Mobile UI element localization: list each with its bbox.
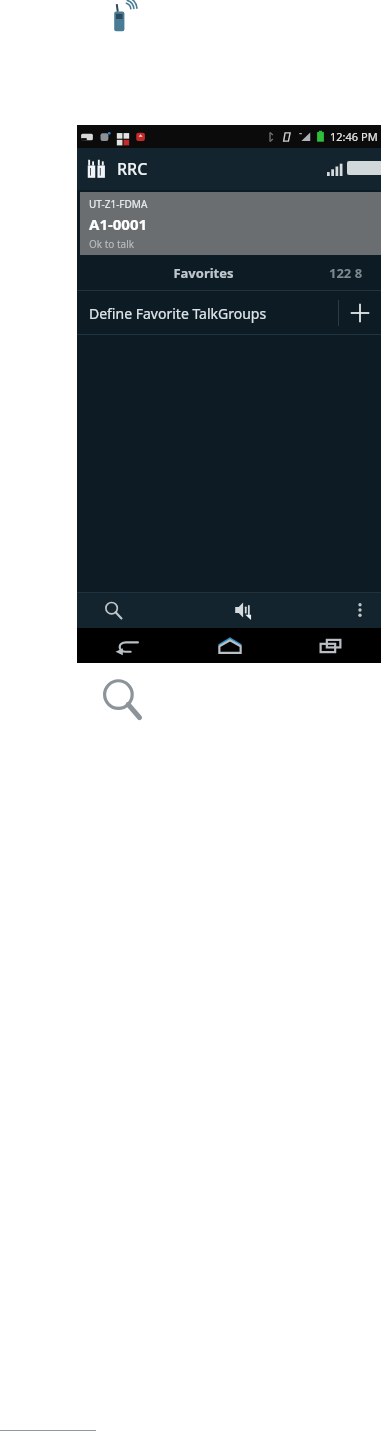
staticText: Favorites xyxy=(173,264,234,282)
button[interactable]: Favorites xyxy=(77,255,329,291)
button[interactable]: Recent apps xyxy=(280,628,381,663)
button[interactable]: Home xyxy=(179,628,280,663)
button[interactable]: Back xyxy=(77,628,179,663)
button[interactable]: Add favorite talkgroup xyxy=(339,291,381,335)
staticText: Define Favorite TalkGroups xyxy=(89,304,338,323)
staticText: 122 8 xyxy=(329,264,363,282)
button[interactable]: Speaker volume xyxy=(149,592,339,628)
button[interactable]: 122 8 xyxy=(329,255,381,291)
staticText: Ok to talk xyxy=(89,237,135,251)
button[interactable]: UT-Z1-FDMA xyxy=(80,192,381,255)
staticText: 12:46 PM xyxy=(330,129,378,144)
button[interactable]: More options xyxy=(339,592,381,628)
button[interactable]: RRC xyxy=(77,148,381,190)
staticText: UT-Z1-FDMA xyxy=(89,197,148,211)
button[interactable]: Search xyxy=(77,592,149,628)
staticText: RRC xyxy=(117,158,148,180)
button[interactable]: Define Favorite TalkGroups xyxy=(77,291,381,335)
staticText: A1-0001 xyxy=(89,214,148,234)
